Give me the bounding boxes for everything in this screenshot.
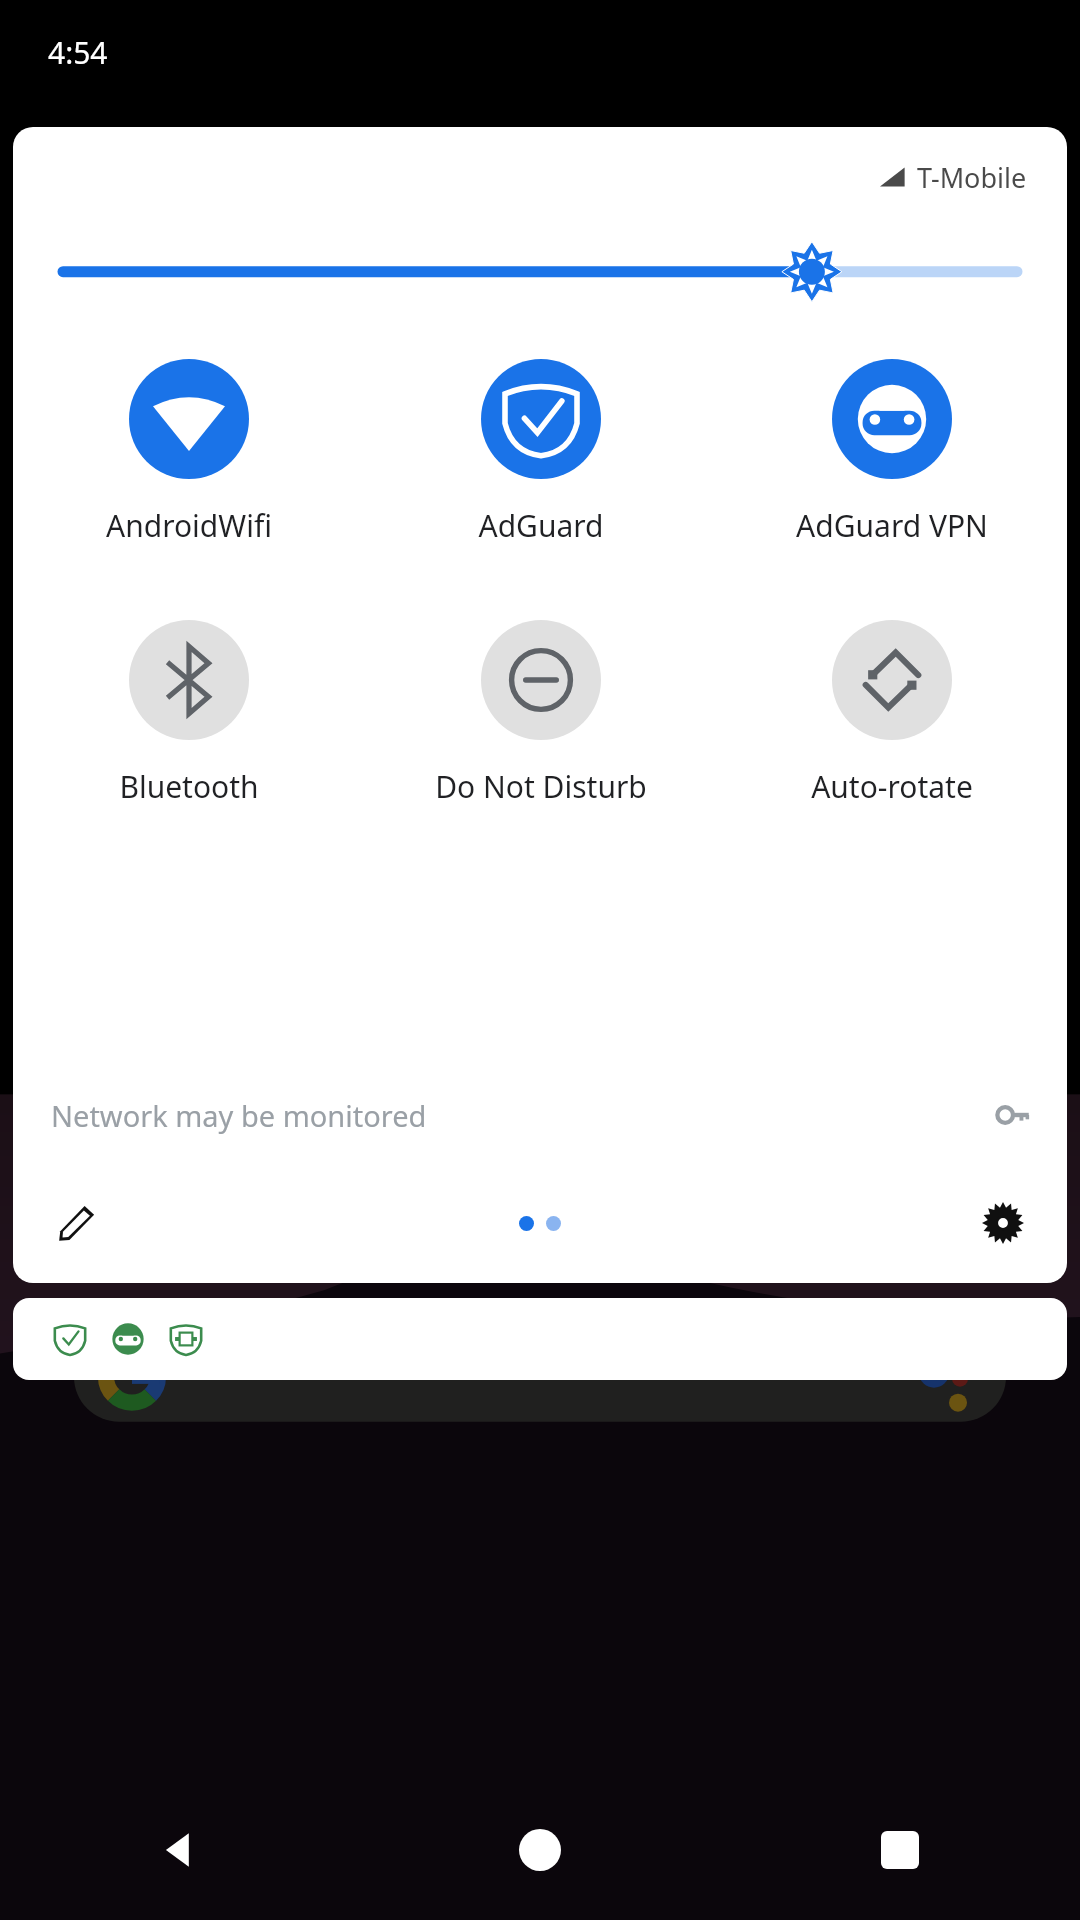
button[interactable]: Bluetooth xyxy=(13,620,365,807)
button[interactable]: Back xyxy=(0,1780,360,1920)
staticText: Do Not Disturb xyxy=(435,766,647,807)
button[interactable]: Recents xyxy=(720,1780,1080,1920)
staticText: T-Mobile xyxy=(917,159,1027,196)
button[interactable]: Edit tiles xyxy=(39,1185,115,1261)
staticText: AdGuard xyxy=(478,505,604,546)
staticText: Network may be monitored xyxy=(51,1096,427,1135)
button[interactable] xyxy=(13,1298,1067,1380)
staticText: Bluetooth xyxy=(119,766,259,807)
button[interactable]: AdGuard VPN xyxy=(716,359,1067,546)
button[interactable]: Network may be monitored xyxy=(13,1067,1067,1163)
staticText: AndroidWifi xyxy=(106,505,272,546)
staticText: 4:54 xyxy=(48,32,108,73)
button[interactable]: Auto-rotate xyxy=(716,620,1067,807)
button[interactable]: Home xyxy=(360,1780,720,1920)
button[interactable]: AndroidWifi xyxy=(13,359,365,546)
button[interactable]: Settings xyxy=(965,1185,1041,1261)
staticText: AdGuard VPN xyxy=(796,505,988,546)
button[interactable]: Do Not Disturb xyxy=(365,620,716,807)
button[interactable]: Brightness xyxy=(13,227,1067,313)
button[interactable]: AdGuard xyxy=(365,359,716,546)
staticText: Auto-rotate xyxy=(811,766,973,807)
